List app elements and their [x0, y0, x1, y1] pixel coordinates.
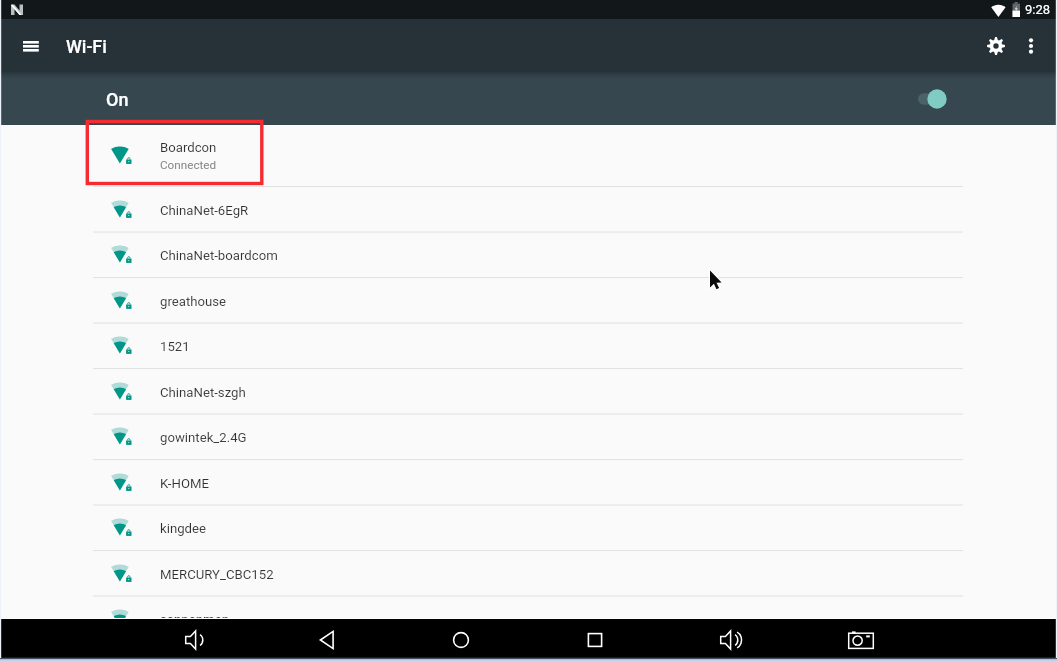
staticText: ChinaNet-boardcom — [160, 248, 278, 263]
button[interactable]: Boardcon — [0, 125, 1057, 186]
staticText: 9:28 — [1025, 2, 1051, 17]
button[interactable]: Volume down — [173, 619, 215, 661]
staticText: sanpanmen — [160, 612, 229, 627]
staticText: MERCURY_CBC152 — [160, 567, 274, 582]
button[interactable]: ChinaNet-szgh — [0, 369, 1057, 415]
button[interactable]: Settings — [974, 24, 1017, 67]
staticText: Boardcon — [160, 140, 217, 155]
button[interactable]: Back — [307, 619, 349, 661]
button[interactable]: Volume up — [708, 619, 750, 661]
staticText: Wi-Fi — [66, 36, 107, 57]
button[interactable]: ChinaNet-boardcom — [0, 232, 1057, 278]
staticText: ChinaNet-szgh — [160, 385, 246, 400]
button[interactable]: More options — [1009, 24, 1052, 67]
button[interactable]: Screenshot — [840, 619, 882, 661]
staticText: 1521 — [160, 339, 190, 354]
button[interactable]: K-HOME — [0, 460, 1057, 506]
staticText: greathouse — [160, 294, 227, 309]
button[interactable]: greathouse — [0, 278, 1057, 324]
staticText: On — [106, 89, 129, 110]
button[interactable]: ChinaNet-6EgR — [0, 187, 1057, 233]
staticText: K-HOME — [160, 476, 209, 491]
staticText: ChinaNet-6EgR — [160, 203, 249, 218]
button[interactable]: sanpanmen — [0, 596, 1057, 642]
button[interactable]: Recent apps — [574, 619, 616, 661]
button[interactable]: Home — [440, 619, 482, 661]
button[interactable]: MERCURY_CBC152 — [0, 551, 1057, 597]
button[interactable]: kingdee — [0, 505, 1057, 551]
staticText: kingdee — [160, 521, 207, 536]
button[interactable]: gowintek_2.4G — [0, 414, 1057, 460]
button[interactable]: Open navigation drawer — [11, 26, 51, 66]
button[interactable]: 1521 — [0, 323, 1057, 369]
staticText: gowintek_2.4G — [160, 430, 247, 445]
button[interactable]: Turn Wi-Fi off — [909, 75, 957, 123]
staticText: Connected — [160, 158, 217, 172]
